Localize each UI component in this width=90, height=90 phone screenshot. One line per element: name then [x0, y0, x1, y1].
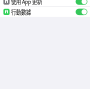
button[interactable]: 使用 App 更新 — [0, 0, 90, 7]
button[interactable]: 行動數據 — [0, 7, 90, 17]
staticText: 使用 App 更新 — [11, 0, 42, 5]
staticText: 行動數據 — [11, 8, 31, 16]
